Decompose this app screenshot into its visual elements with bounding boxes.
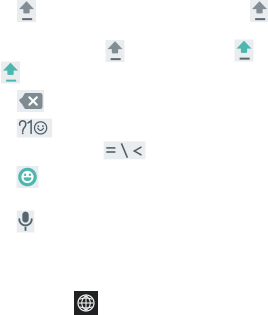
button[interactable]: Numbers and symbols <box>17 119 52 137</box>
button[interactable]: Switch keyboard <box>74 291 98 315</box>
button[interactable]: Shift <box>17 0 36 22</box>
button[interactable]: Shift enabled <box>234 39 253 61</box>
button[interactable]: Caps lock <box>1 61 20 83</box>
button[interactable]: Dictate <box>17 210 34 232</box>
button[interactable]: Shift <box>105 40 124 62</box>
button[interactable]: Delete <box>17 90 44 112</box>
button[interactable]: More symbols <box>104 141 145 159</box>
button[interactable]: Shift <box>250 0 268 22</box>
button[interactable]: Emoji <box>16 166 38 188</box>
